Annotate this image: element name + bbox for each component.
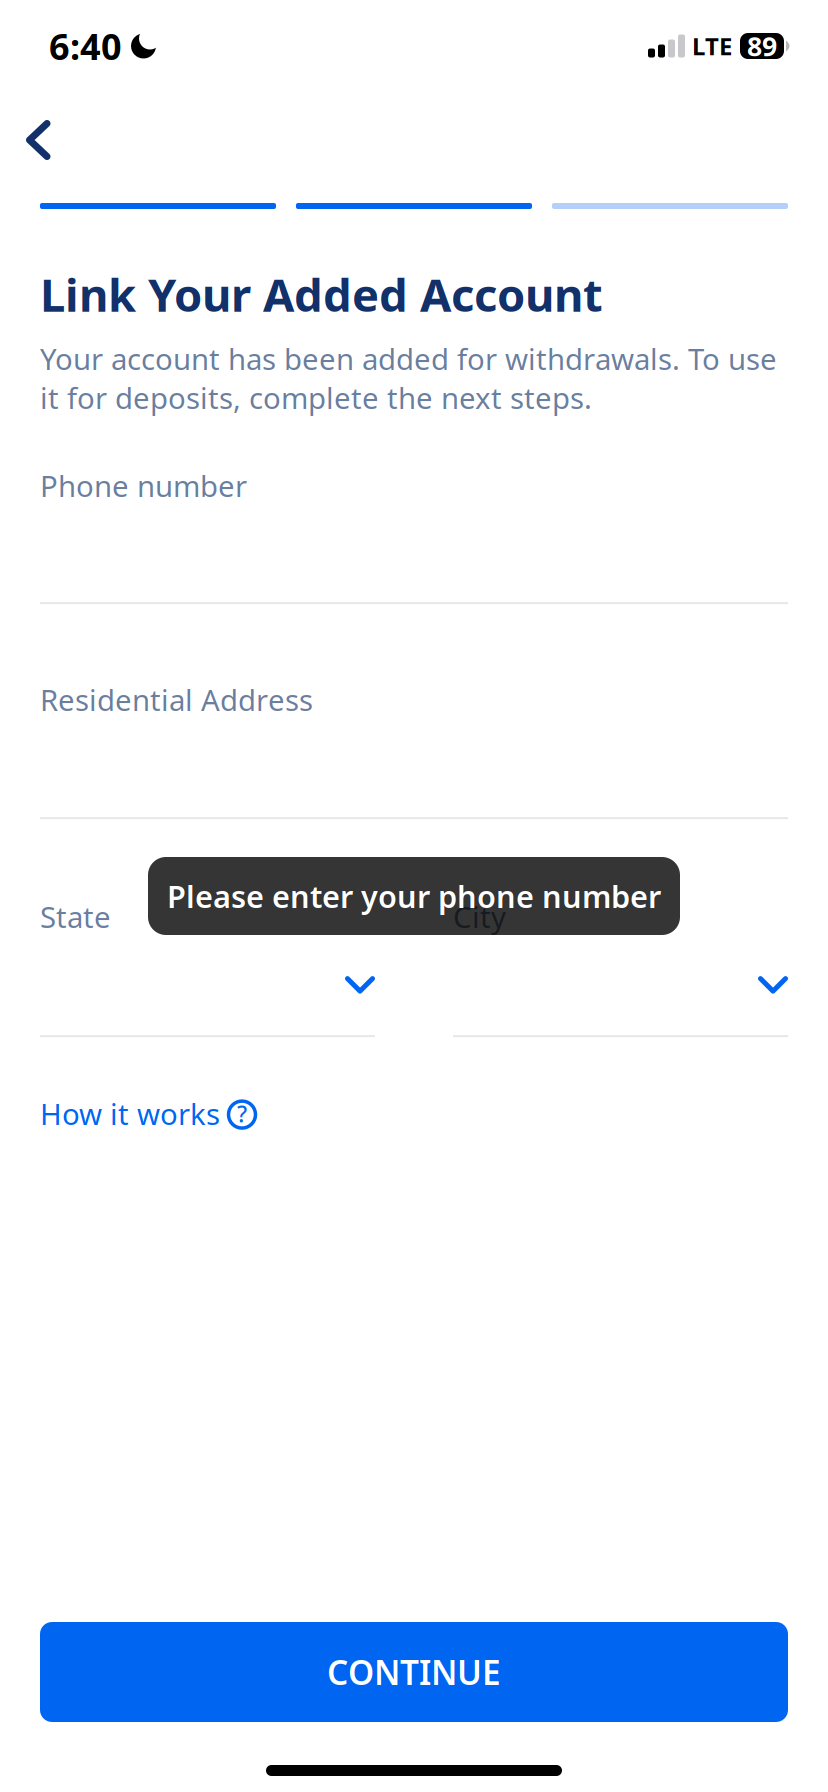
staticText: CONTINUE bbox=[327, 1650, 501, 1694]
staticText: 6:40 bbox=[49, 22, 122, 70]
staticText: City bbox=[453, 897, 506, 936]
staticText: Link Your Added Account bbox=[40, 264, 603, 324]
button[interactable]: Back bbox=[0, 92, 828, 203]
staticText: Please enter your phone number bbox=[167, 876, 661, 916]
staticText: Residential Address bbox=[40, 680, 313, 719]
staticText: 89 bbox=[747, 28, 777, 64]
staticText: Phone number bbox=[40, 466, 247, 505]
button[interactable]: CONTINUE bbox=[40, 1622, 788, 1722]
staticText: ? bbox=[237, 1098, 247, 1129]
staticText: How it works bbox=[40, 1094, 220, 1133]
staticText: Your account has been added for withdraw… bbox=[40, 339, 777, 417]
staticText: LTE bbox=[692, 30, 732, 62]
staticText: State bbox=[40, 897, 111, 936]
button[interactable]: How it works bbox=[0, 1037, 828, 1150]
